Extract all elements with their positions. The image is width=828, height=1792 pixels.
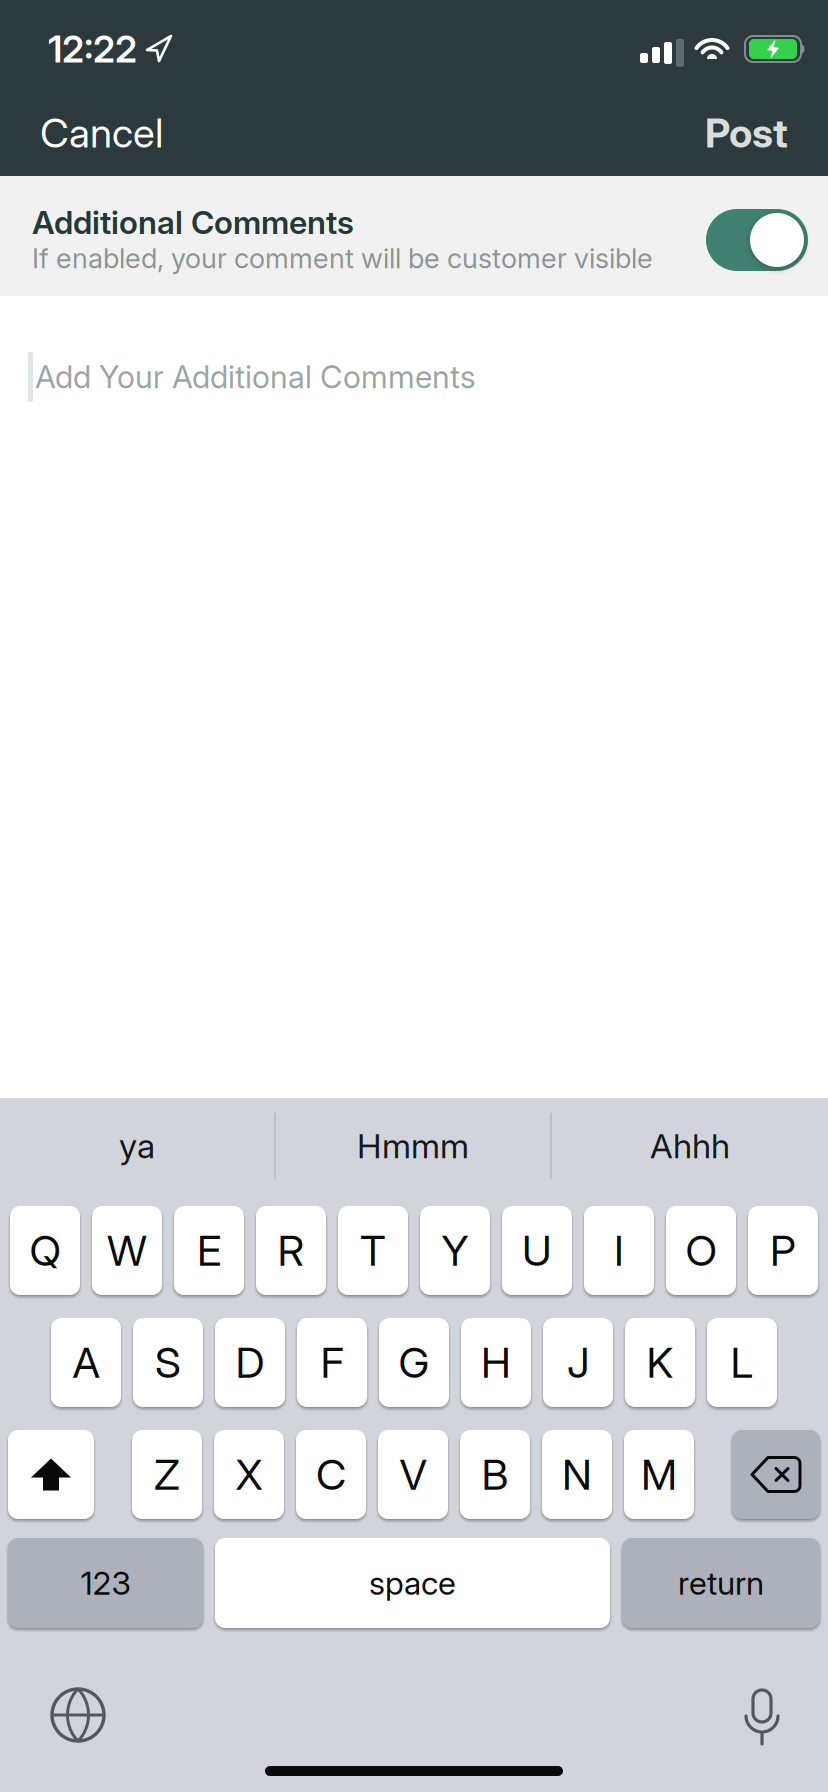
button[interactable]: X (214, 1430, 284, 1519)
button[interactable]: ya (0, 1098, 274, 1194)
button[interactable]: return (622, 1538, 820, 1628)
button[interactable]: E (174, 1206, 244, 1295)
staticText: H (481, 1337, 511, 1388)
button[interactable]: O (666, 1206, 736, 1295)
button[interactable]: Q (10, 1206, 80, 1295)
staticText: Y (441, 1225, 468, 1276)
button[interactable]: M (624, 1430, 694, 1519)
button[interactable]: P (748, 1206, 818, 1295)
button[interactable]: W (92, 1206, 162, 1295)
staticText: S (155, 1337, 181, 1388)
button[interactable]: K (625, 1318, 695, 1407)
button[interactable]: A (51, 1318, 121, 1407)
staticText: I (614, 1225, 624, 1276)
button[interactable]: Y (420, 1206, 490, 1295)
staticText: K (646, 1337, 673, 1388)
staticText: ya (119, 1125, 155, 1166)
staticText: Additional Comments (32, 203, 354, 242)
button[interactable]: Z (132, 1430, 202, 1519)
staticText: U (522, 1225, 552, 1276)
staticText: A (72, 1337, 99, 1388)
button[interactable]: C (296, 1430, 366, 1519)
staticText: Post (705, 109, 788, 157)
button[interactable]: U (502, 1206, 572, 1295)
staticText: G (398, 1337, 429, 1388)
button[interactable]: H (461, 1318, 531, 1407)
staticText: Ahhh (650, 1125, 730, 1166)
button[interactable]: I (584, 1206, 654, 1295)
staticText: 123 (80, 1564, 130, 1602)
button[interactable]: D (215, 1318, 285, 1407)
button[interactable]: Additional Comments (706, 209, 808, 271)
staticText: R (277, 1225, 304, 1276)
button[interactable]: B (460, 1430, 530, 1519)
button[interactable]: space (215, 1538, 610, 1628)
button[interactable]: Cancel (40, 109, 163, 157)
button[interactable]: Hmmm (276, 1098, 550, 1194)
staticText: M (641, 1449, 677, 1500)
button[interactable]: N (542, 1430, 612, 1519)
staticText: E (197, 1225, 221, 1276)
staticText: N (562, 1449, 592, 1500)
staticText: Hmmm (357, 1125, 469, 1166)
staticText: X (235, 1449, 262, 1500)
staticText: space (369, 1564, 456, 1602)
staticText: 12:22 (48, 27, 137, 71)
button[interactable]: F (297, 1318, 367, 1407)
button[interactable]: G (379, 1318, 449, 1407)
staticText: If enabled, your comment will be custome… (32, 242, 653, 275)
staticText: return (678, 1564, 764, 1602)
staticText: T (360, 1225, 386, 1276)
button[interactable]: Shift (8, 1430, 94, 1519)
staticText: D (235, 1337, 264, 1388)
staticText: V (399, 1449, 426, 1500)
button[interactable]: 123 (8, 1538, 203, 1628)
button[interactable]: S (133, 1318, 203, 1407)
staticText: Add Your Additional Comments (35, 358, 476, 396)
staticText: C (316, 1449, 346, 1500)
staticText: B (481, 1449, 508, 1500)
button[interactable]: Post (705, 109, 788, 157)
staticText: P (770, 1225, 796, 1276)
staticText: F (320, 1337, 343, 1388)
staticText: W (107, 1225, 147, 1276)
staticText: Z (154, 1449, 180, 1500)
staticText: J (567, 1337, 589, 1388)
button[interactable]: V (378, 1430, 448, 1519)
button[interactable]: T (338, 1206, 408, 1295)
button[interactable]: Delete (732, 1430, 820, 1519)
button[interactable]: Next keyboard (46, 1683, 110, 1747)
staticText: Q (29, 1225, 60, 1276)
staticText: O (685, 1225, 716, 1276)
button[interactable]: Ahhh (552, 1098, 828, 1194)
staticText: Cancel (40, 109, 163, 157)
button[interactable]: R (256, 1206, 326, 1295)
button[interactable]: L (707, 1318, 777, 1407)
staticText: L (730, 1337, 753, 1388)
button[interactable]: J (543, 1318, 613, 1407)
button[interactable]: Dictation (734, 1683, 790, 1747)
